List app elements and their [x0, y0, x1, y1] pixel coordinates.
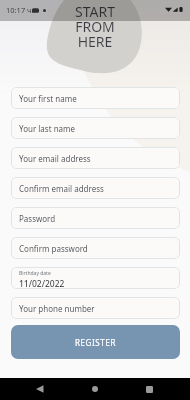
staticText: REGISTER [75, 337, 117, 348]
button[interactable]: Your first name [11, 87, 180, 109]
button[interactable]: Your phone number [11, 297, 180, 319]
button[interactable]: REGISTER [11, 325, 180, 359]
button[interactable]: Home [83, 378, 107, 400]
button[interactable]: Birthday date [11, 267, 180, 289]
staticText: 11/02/2022 [19, 278, 65, 289]
button[interactable]: Recent apps [137, 378, 161, 400]
staticText: Your email address [19, 153, 91, 164]
button[interactable]: Your email address [11, 147, 180, 169]
button[interactable]: Your last name [11, 117, 180, 139]
button[interactable]: Back [28, 378, 52, 400]
staticText: Password [19, 213, 56, 224]
button[interactable]: Password [11, 207, 180, 229]
staticText: Confirm email address [19, 183, 104, 194]
staticText: START FROM HERE [64, 2, 126, 51]
staticText: 10:17 ч. [6, 5, 34, 15]
staticText: Confirm password [19, 243, 88, 254]
button[interactable]: Confirm password [11, 237, 180, 259]
staticText: Birthday date [19, 270, 51, 277]
staticText: Your last name [19, 123, 76, 134]
staticText: Your phone number [19, 303, 95, 314]
staticText: Your first name [19, 93, 77, 104]
button[interactable]: Confirm email address [11, 177, 180, 199]
